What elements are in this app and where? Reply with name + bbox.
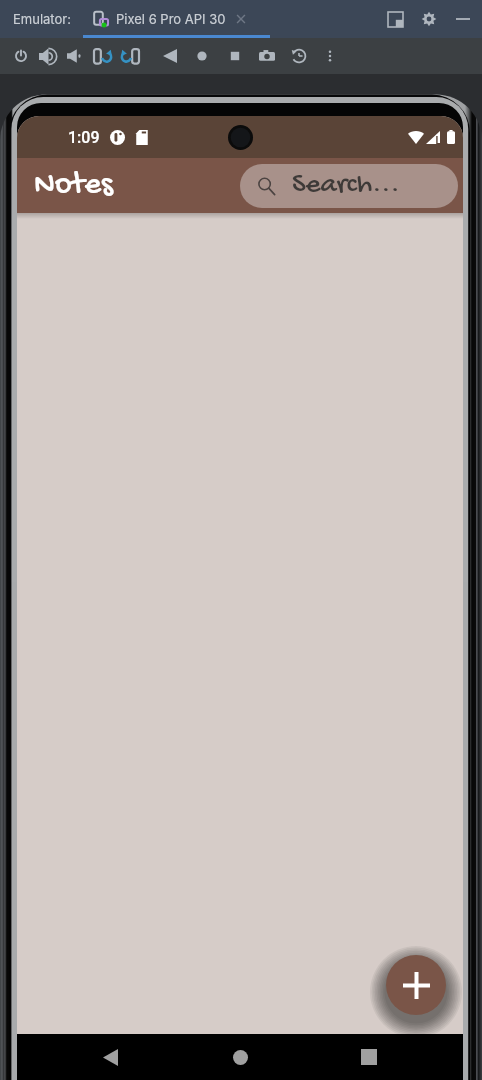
button[interactable]: Device [92,10,248,28]
button[interactable]: Home [189,38,215,74]
button[interactable]: Back [81,1034,139,1080]
button[interactable]: Search... [240,164,458,208]
other: Minimize [456,12,470,26]
button[interactable]: Minimize [452,8,474,30]
button[interactable]: Split window [384,8,406,30]
button[interactable]: Overview [222,38,248,74]
button[interactable]: Power [8,38,34,74]
staticText: Pixel 6 Pro API 30 [116,11,226,27]
button[interactable]: Settings [418,8,440,30]
other: Settings [421,11,437,27]
button[interactable]: Notes [34,167,113,205]
staticText: Emulator: [13,11,71,27]
staticText: 1:09 [68,128,100,147]
staticText: Notes [34,167,113,205]
other: Close tab [234,12,248,26]
button[interactable]: Add note [386,955,446,1015]
button[interactable]: More [317,38,343,74]
button[interactable]: Rotate right [117,38,143,74]
button[interactable]: History [286,38,312,74]
button[interactable]: Screenshot [254,38,280,74]
button[interactable]: Volume down [61,38,87,74]
other: Device [92,10,110,28]
button[interactable]: Volume up [34,38,60,74]
button[interactable]: Rotate left [90,38,116,74]
button[interactable]: Recent apps [340,1034,398,1080]
other: Split window [388,12,403,27]
button[interactable]: Back [157,38,183,74]
button[interactable]: Home [211,1034,269,1080]
staticText: Search... [292,169,400,203]
